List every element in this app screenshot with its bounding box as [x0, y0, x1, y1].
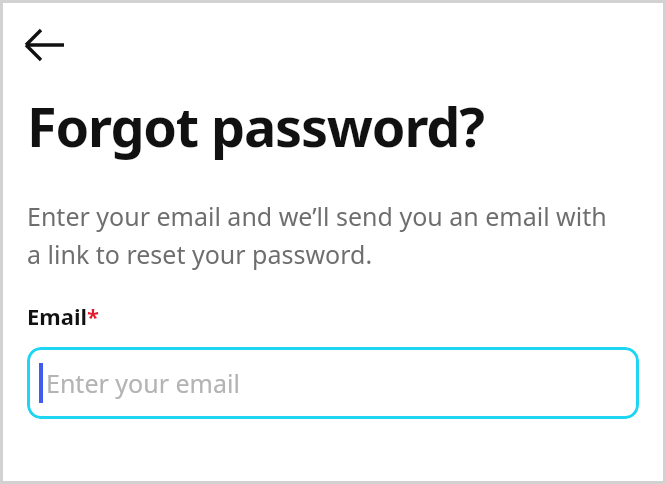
button[interactable]: Back	[23, 25, 71, 65]
staticText: Enter your email	[46, 366, 240, 400]
button[interactable]: Enter your email	[27, 347, 639, 419]
staticText: Enter your email and we’ll send you an e…	[27, 199, 623, 271]
staticText: Email*	[27, 301, 100, 331]
staticText: Forgot password?	[27, 89, 484, 163]
